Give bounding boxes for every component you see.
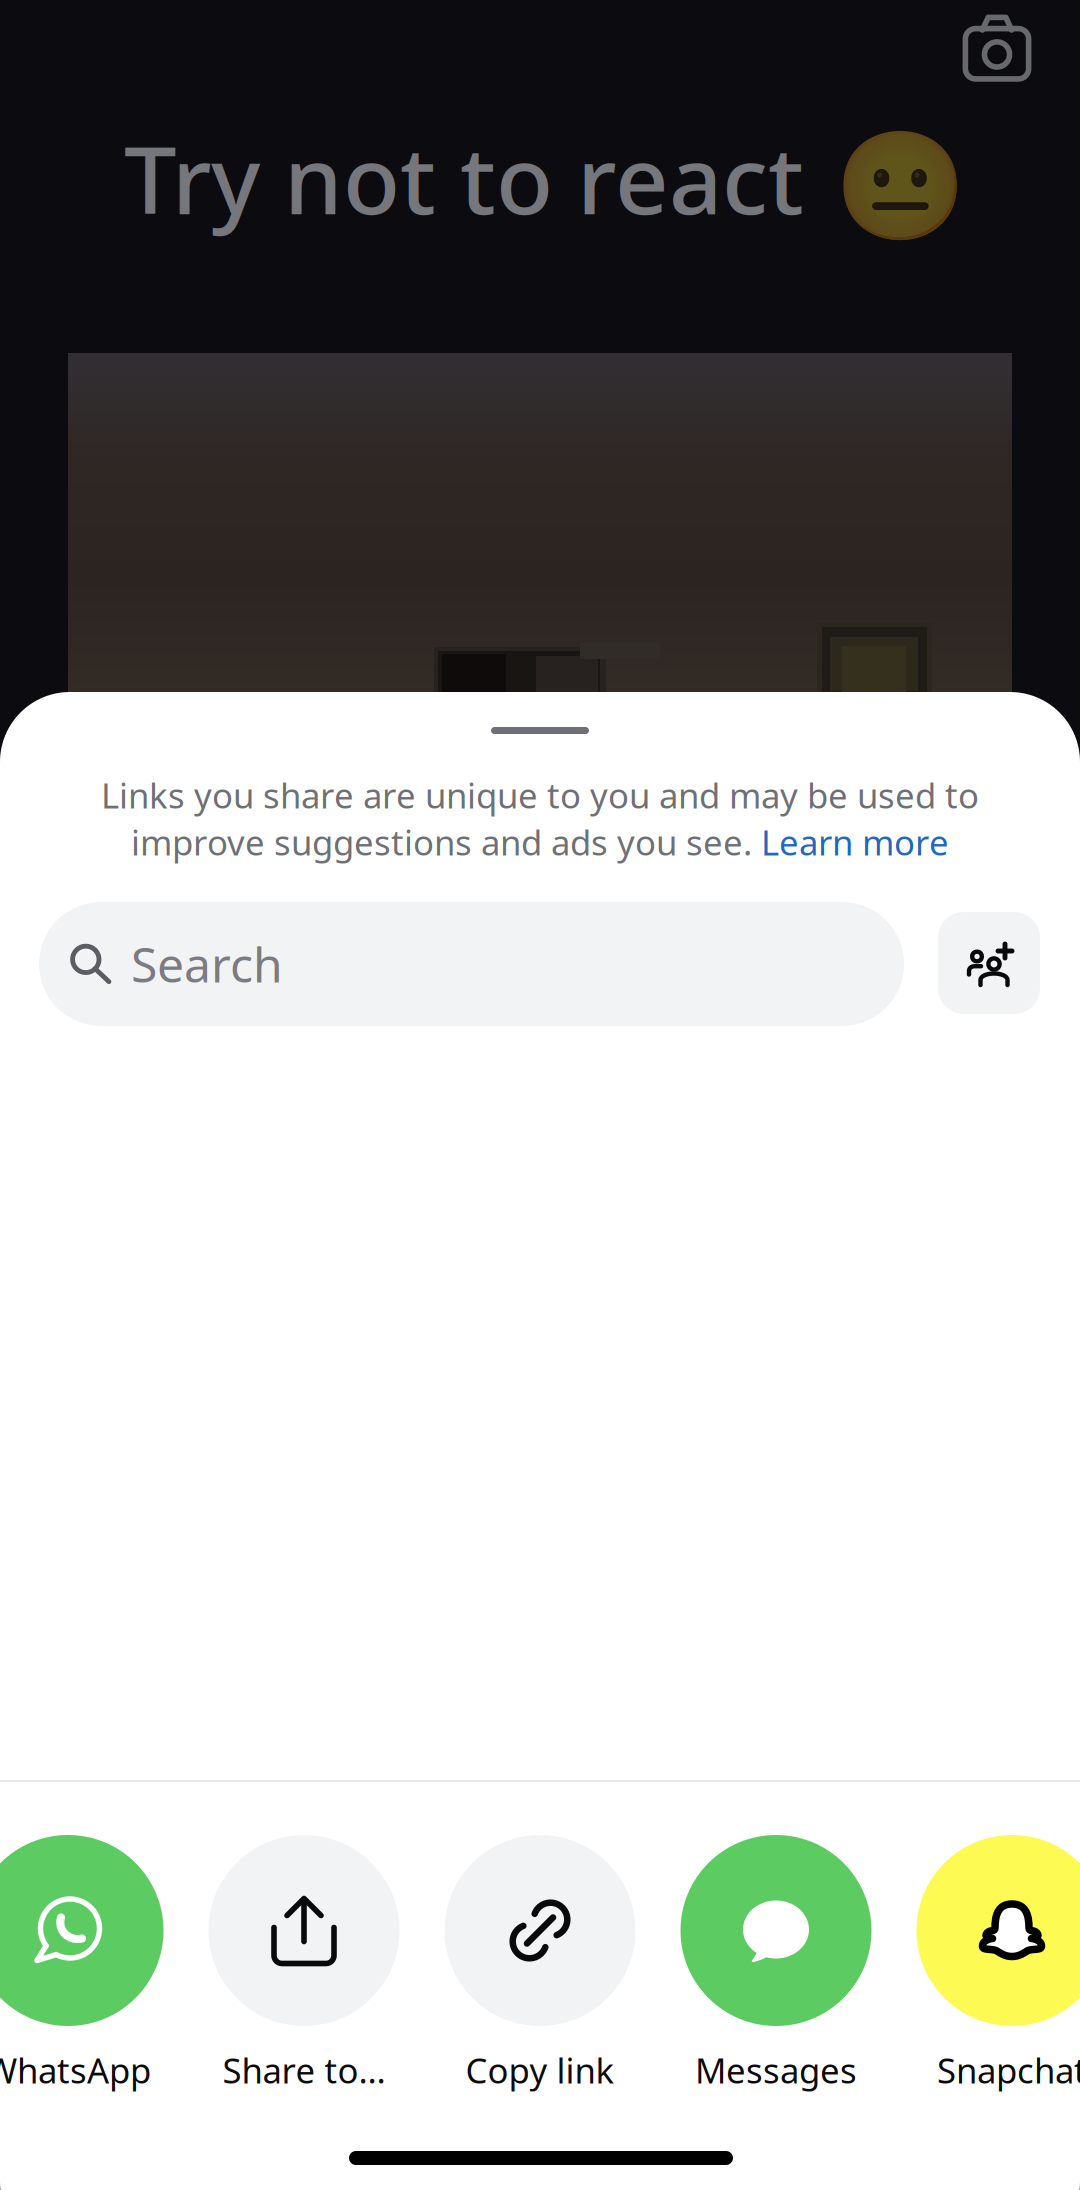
staticText: Try not to react [124,116,804,240]
staticText: improve suggestions and ads you see. [131,819,761,865]
staticText: 😐 [834,126,967,248]
button[interactable]: Camera [949,0,1045,96]
staticText: Search [131,932,283,996]
button[interactable]: Copy link [422,1835,658,2107]
button[interactable]: Share to... [186,1835,422,2107]
button[interactable]: Messages [658,1835,894,2107]
staticText: Share to... [222,2047,385,2093]
button[interactable]: Search [39,902,904,1026]
staticText: Learn more [761,819,949,865]
button[interactable]: Create group [938,912,1040,1014]
staticText: Links you share are unique to you and ma… [101,772,979,818]
button[interactable]: Learn more [761,819,949,865]
staticText: Messages [695,2047,857,2093]
button[interactable]: Snapchat [894,1835,1080,2107]
button[interactable]: WhatsApp [0,1835,186,2107]
staticText: WhatsApp [0,2047,151,2093]
staticText: Snapchat [937,2047,1080,2093]
staticText: Copy link [465,2047,614,2093]
